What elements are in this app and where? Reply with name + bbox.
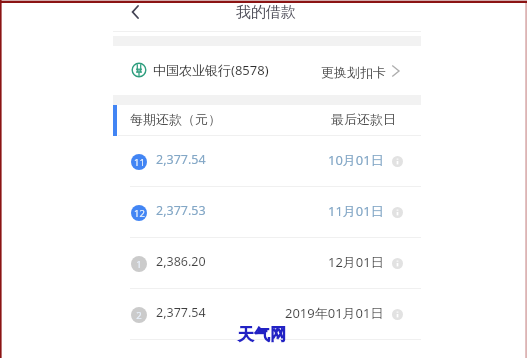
- staticText: 10月01日: [328, 151, 384, 169]
- staticText: 我的借款: [236, 3, 296, 22]
- button[interactable]: 中国农业银行(8578): [113, 46, 421, 95]
- button[interactable]: Info: [392, 309, 403, 320]
- staticText: 最后还款日: [331, 111, 396, 127]
- staticText: 2: [136, 309, 142, 322]
- staticText: 1: [136, 258, 142, 271]
- button[interactable]: Info: [392, 156, 403, 167]
- button[interactable]: Back: [117, 1, 153, 23]
- button[interactable]: Info: [392, 258, 403, 269]
- staticText: 11月01日: [328, 202, 384, 220]
- button[interactable]: 11: [113, 136, 421, 187]
- button[interactable]: Info: [392, 207, 403, 218]
- staticText: 2,377.54: [156, 151, 206, 168]
- staticText: 11: [134, 156, 145, 169]
- staticText: 每期还款（元）: [130, 111, 221, 127]
- staticText: 中国农业银行(8578): [153, 61, 269, 79]
- staticText: 2,386.20: [156, 253, 206, 270]
- staticText: 12月01日: [328, 253, 384, 271]
- staticText: 2019年01月01日: [285, 304, 384, 322]
- button[interactable]: 2: [113, 289, 421, 340]
- button[interactable]: 1: [113, 238, 421, 289]
- staticText: 2,377.53: [156, 202, 206, 219]
- staticText: 天气网: [238, 325, 286, 345]
- staticText: 12: [134, 207, 145, 220]
- staticText: 更换划扣卡: [321, 64, 386, 80]
- staticText: 2,377.54: [156, 304, 206, 321]
- button[interactable]: 12: [113, 187, 421, 238]
